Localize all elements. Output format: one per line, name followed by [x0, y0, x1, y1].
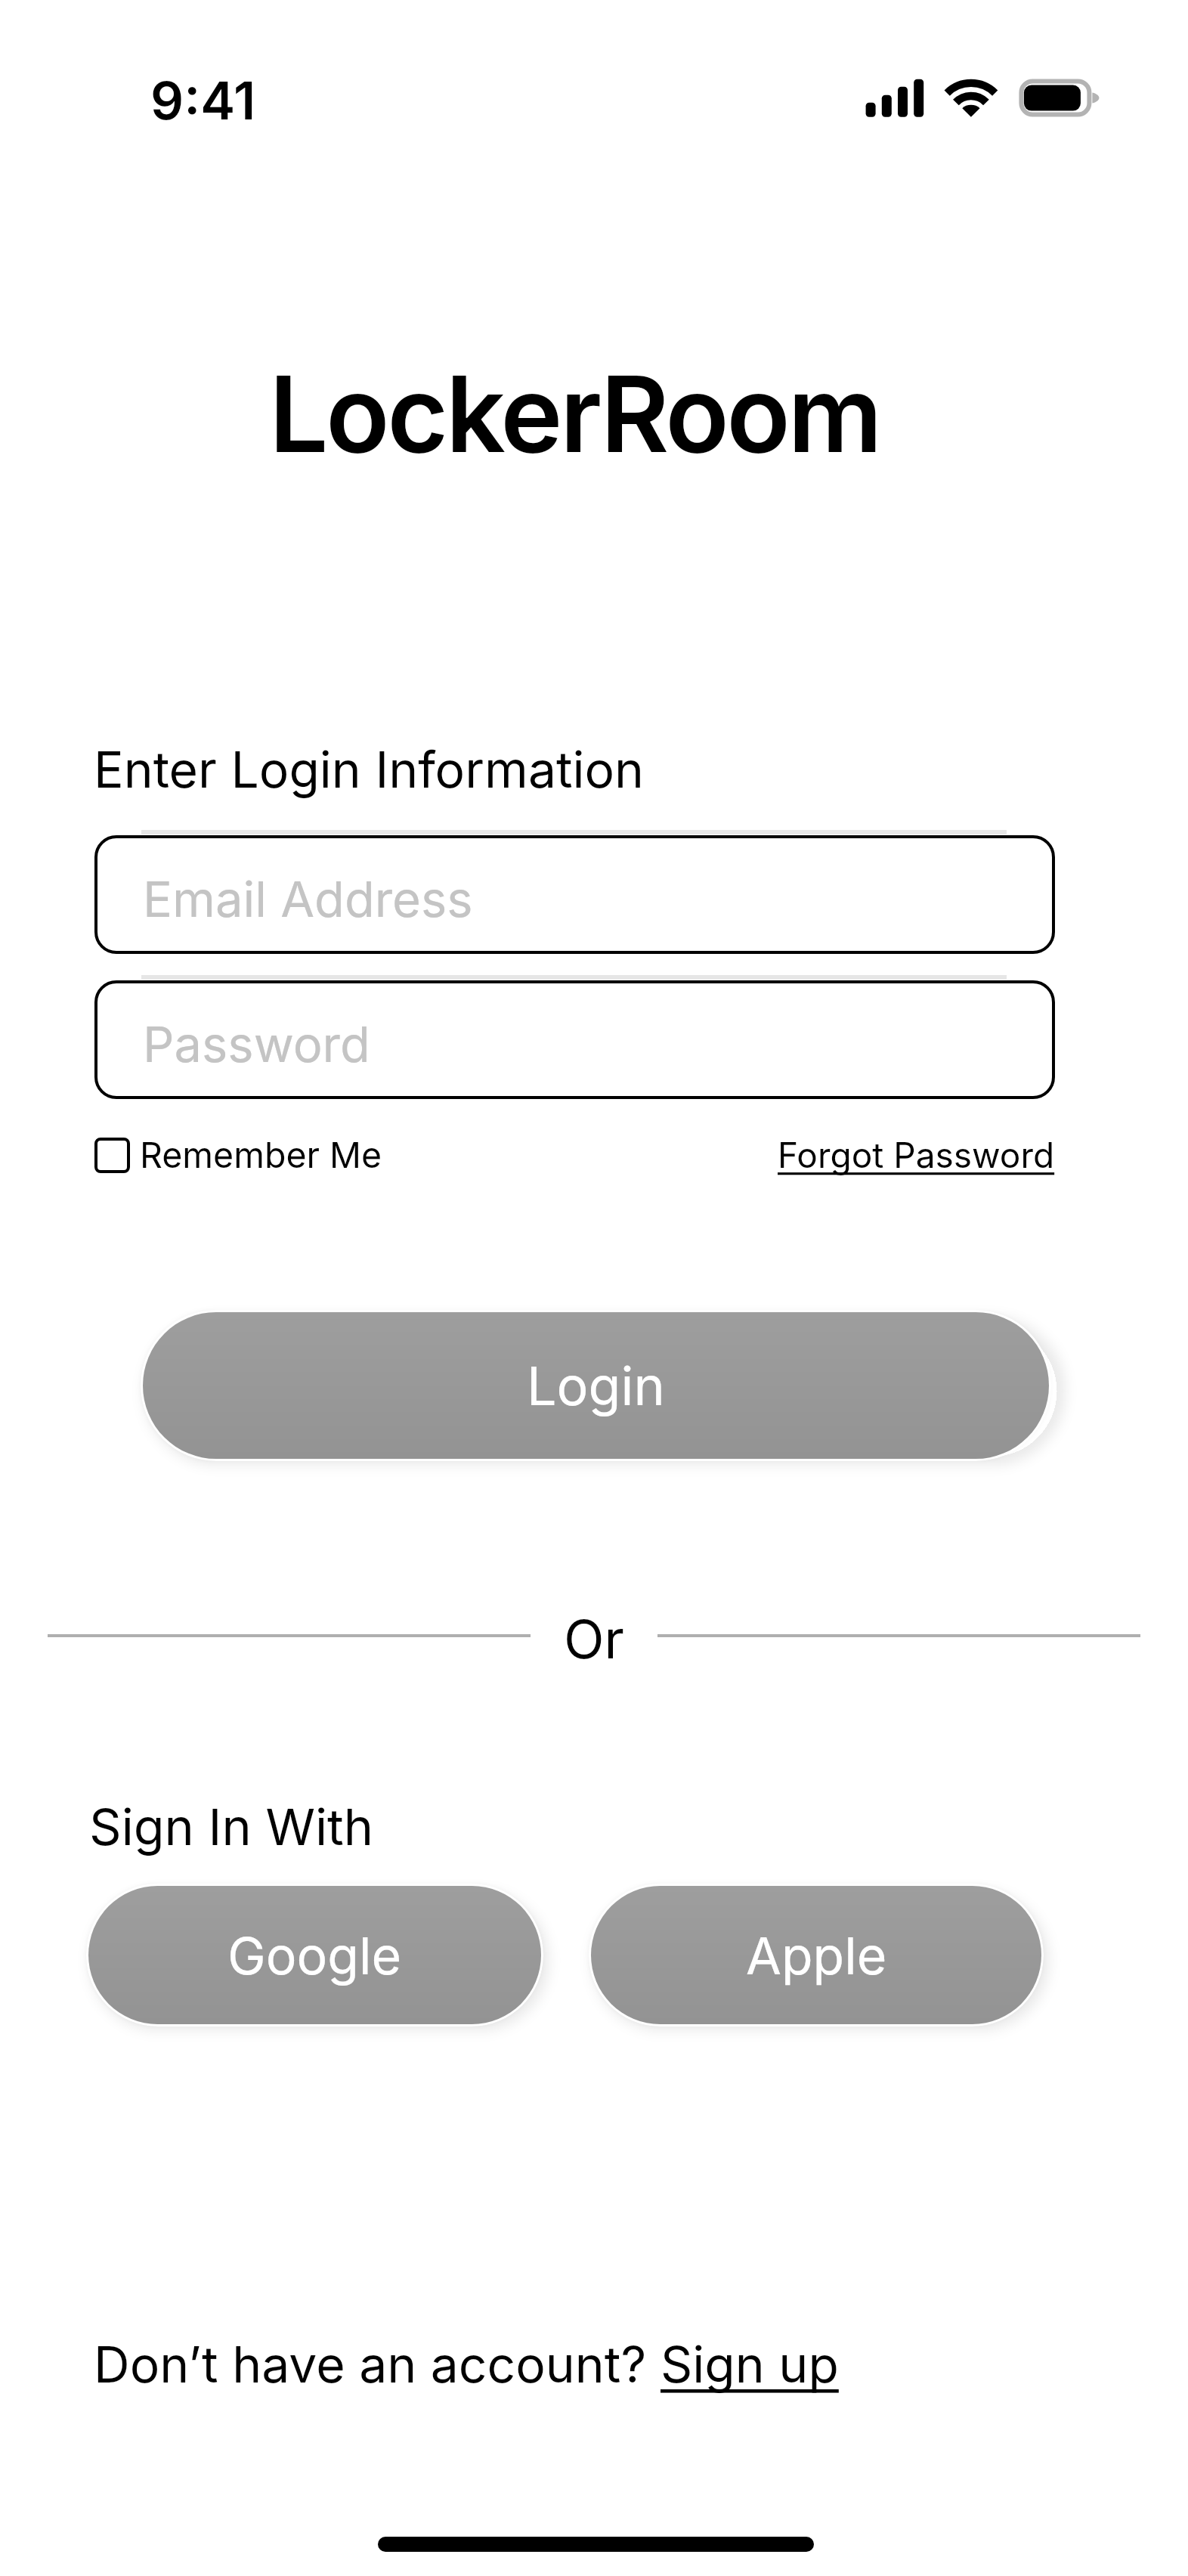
- staticText: 9:41: [150, 69, 256, 132]
- staticText: Google: [227, 1924, 402, 1986]
- button[interactable]: Sign up: [661, 2334, 839, 2395]
- staticText: Or: [564, 1607, 624, 1664]
- staticText: Sign In With: [89, 1797, 374, 1857]
- staticText: Email Address: [143, 869, 473, 929]
- staticText: Login: [527, 1354, 665, 1418]
- staticText: Remember Me: [140, 1134, 382, 1176]
- button[interactable]: Password: [94, 980, 1055, 1099]
- other: Cellular signal, Wi-Fi and battery statu…: [862, 72, 1111, 128]
- button[interactable]: Remember Me: [94, 1132, 382, 1178]
- button[interactable]: Email Address: [94, 835, 1055, 954]
- staticText: LockerRoom: [269, 350, 880, 477]
- staticText: Forgot Password: [778, 1134, 1055, 1176]
- button[interactable]: Google: [88, 1886, 541, 2024]
- button[interactable]: Apple: [591, 1886, 1041, 2024]
- button[interactable]: Login: [143, 1312, 1049, 1459]
- staticText: Enter Login Information: [94, 739, 645, 800]
- staticText: Apple: [746, 1924, 887, 1986]
- staticText: Don’t have an account?: [94, 2334, 661, 2395]
- staticText: Password: [143, 1014, 370, 1074]
- button[interactable]: Forgot Password: [778, 1132, 1055, 1178]
